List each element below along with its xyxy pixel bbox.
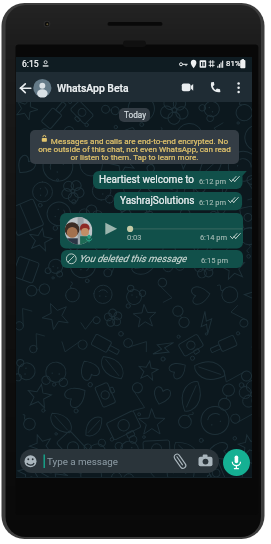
button[interactable]: More options bbox=[228, 77, 250, 97]
staticText: 6:15 pm bbox=[61, 256, 228, 265]
button[interactable]: Record voice message bbox=[223, 449, 250, 476]
staticText: Today bbox=[124, 110, 147, 120]
staticText: 6:15 bbox=[22, 59, 39, 69]
staticText: Type a message bbox=[47, 456, 118, 467]
staticText: 0:03 bbox=[127, 233, 142, 242]
button[interactable]: WhatsApp Beta bbox=[33, 73, 168, 101]
staticText: Messages and calls are end-to-end encryp… bbox=[35, 136, 239, 146]
staticText: Heartiest welcome to bbox=[99, 174, 195, 186]
button[interactable]: 0:03 bbox=[60, 213, 243, 249]
button[interactable]: Today bbox=[119, 108, 150, 122]
button[interactable]: You deleted this message bbox=[61, 250, 243, 268]
staticText: You deleted this message bbox=[79, 253, 187, 264]
staticText: 6:12 pm bbox=[114, 198, 226, 207]
staticText: YashrajSolutions bbox=[120, 195, 195, 207]
staticText: one outside of this chat, not even Whats… bbox=[30, 144, 239, 154]
staticText: or listen to them. Tap to learn more. bbox=[30, 152, 239, 162]
button[interactable]: Back bbox=[16, 76, 36, 100]
staticText: 6:12 pm bbox=[93, 177, 226, 186]
button[interactable]: Messages and calls are end-to-end encryp… bbox=[30, 130, 239, 164]
button[interactable]: Heartiest welcome to bbox=[93, 171, 243, 189]
button[interactable]: Type a message bbox=[20, 449, 219, 473]
staticText: 81% bbox=[226, 59, 241, 68]
button[interactable]: Video call bbox=[176, 77, 198, 97]
staticText: WhatsApp Beta bbox=[57, 82, 129, 94]
staticText: 6:14 pm bbox=[60, 233, 227, 242]
button[interactable]: YashrajSolutions bbox=[114, 192, 242, 210]
button[interactable]: Voice call bbox=[205, 77, 227, 97]
